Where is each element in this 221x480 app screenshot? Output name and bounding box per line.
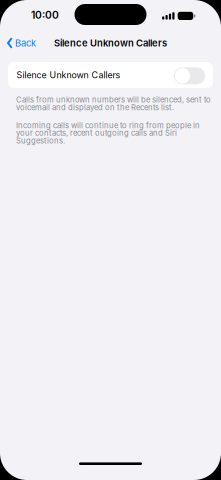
staticText: Silence Unknown Callers bbox=[16, 70, 120, 80]
staticText: 10:00 bbox=[31, 9, 59, 21]
staticText: Incoming calls will continue to ring fro… bbox=[16, 122, 200, 144]
staticText: Calls from unknown numbers will be silen… bbox=[16, 96, 211, 111]
staticText: Back bbox=[15, 37, 36, 48]
button[interactable]: Back bbox=[0, 37, 36, 49]
button[interactable]: Silence Unknown Callers bbox=[174, 66, 205, 83]
staticText: Silence Unknown Callers bbox=[54, 37, 167, 48]
